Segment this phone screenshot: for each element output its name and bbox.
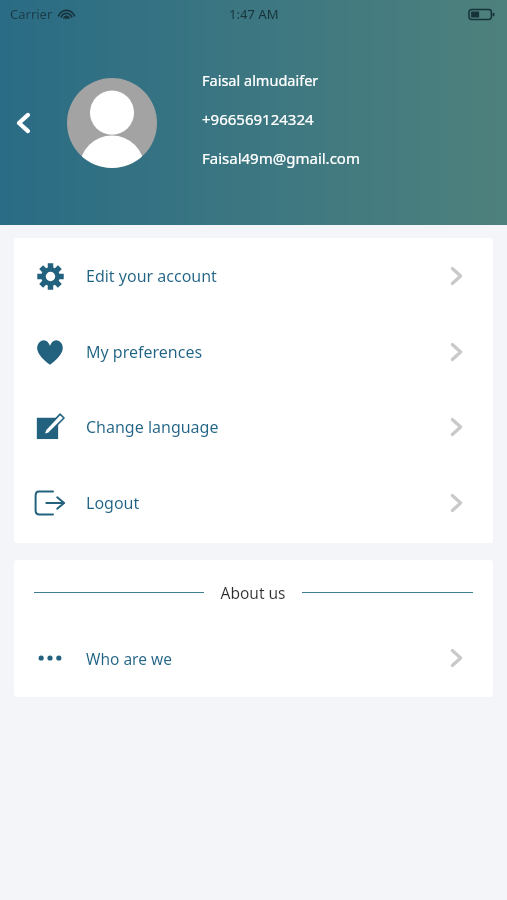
button[interactable]: Who are we [14,635,493,681]
button[interactable]: Edit your account [14,238,493,314]
staticText: Who are we [86,648,172,669]
staticText: 1:47 AM [229,5,279,23]
staticText: Logout [86,492,140,514]
staticText: About us [220,582,286,603]
button[interactable]: My preferences [14,314,493,390]
button[interactable]: Logout [14,465,493,541]
staticText: +966569124324 [202,109,314,129]
staticText: Faisal almudaifer [202,70,319,90]
staticText: Edit your account [86,265,217,287]
button[interactable]: Back [0,95,48,151]
staticText: My preferences [86,341,203,363]
button[interactable]: Change language [14,389,493,465]
staticText: Change language [86,416,219,438]
staticText: Carrier [10,5,53,23]
staticText: Faisal49m@gmail.com [202,148,360,168]
